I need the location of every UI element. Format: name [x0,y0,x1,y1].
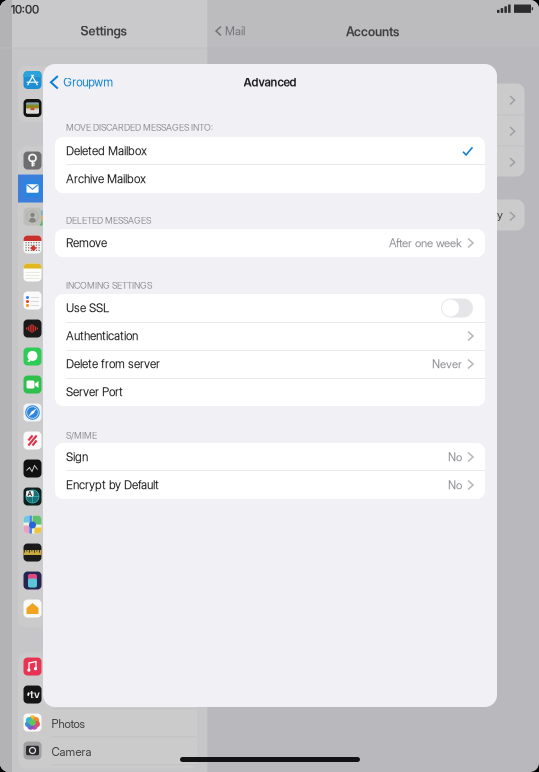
staticText: 10:00 [11,3,39,17]
staticText: S/MIME [66,430,97,441]
staticText: Use SSL [66,301,109,315]
staticText: Photos [51,717,84,731]
staticText: Delete from server [66,357,160,371]
button[interactable]: Encrypt by Default [55,471,485,499]
staticText: Remove [66,236,107,250]
button[interactable]: Mail [216,24,245,38]
staticText: No [448,450,462,464]
button[interactable]: Delete from server [55,350,485,378]
staticText: y [497,208,503,222]
staticText: tv [30,688,40,701]
staticText: A [27,490,32,498]
staticText: Mail [225,24,245,38]
button[interactable]: Sign [55,443,485,471]
button[interactable]: Deleted Mailbox [55,137,485,165]
staticText: Accounts [346,24,399,39]
staticText: Camera [51,745,91,759]
staticText: Server Port [66,385,123,399]
staticText: Groupwm [63,75,113,89]
button[interactable]: Use SSL [55,294,485,322]
staticText: Archive Mailbox [66,172,146,186]
staticText: Settings [80,23,126,39]
staticText: MOVE DISCARDED MESSAGES INTO: [66,122,213,133]
button[interactable]: Authentication [55,322,485,350]
staticText: Authentication [66,329,138,343]
staticText: Never [432,357,462,371]
staticText: DELETED MESSAGES [66,215,151,226]
staticText: Deleted Mailbox [66,144,147,158]
staticText: No [448,478,462,492]
button[interactable]: Remove [55,229,485,257]
button[interactable]: Groupwm [43,75,113,89]
staticText: After one week [389,236,462,250]
staticText: Sign [66,450,88,464]
staticText: INCOMING SETTINGS [66,280,152,291]
staticText: Advanced [243,75,296,89]
button[interactable]: Archive Mailbox [55,165,485,193]
staticText: Encrypt by Default [66,478,159,492]
button[interactable]: Server Port [55,378,485,406]
